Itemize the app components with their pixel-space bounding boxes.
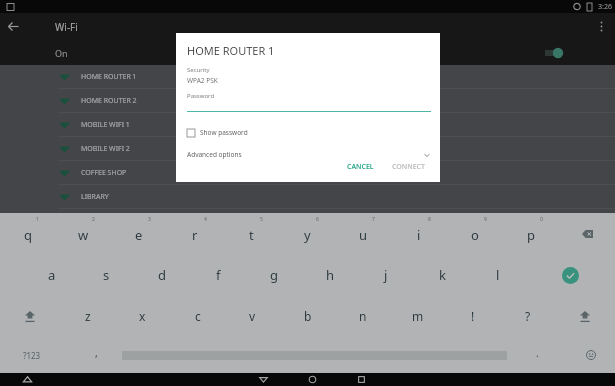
button[interactable]: f — [190, 255, 246, 295]
button[interactable]: Home — [307, 374, 318, 385]
button[interactable]: CANCEL — [341, 159, 380, 173]
button[interactable]: Navigate up — [22, 374, 33, 385]
button[interactable]: 8 — [391, 213, 447, 255]
button[interactable]: COFFEE SHOP — [0, 161, 615, 184]
button[interactable]: MOBILE WIFI 2 — [0, 137, 615, 160]
staticText: 5 — [260, 216, 263, 223]
staticText: . — [536, 346, 539, 360]
button[interactable]: z — [60, 295, 115, 337]
staticText: HOME ROUTER 2 — [81, 96, 137, 106]
button[interactable]: h — [302, 255, 358, 295]
staticText: i — [417, 226, 421, 244]
staticText: b — [304, 308, 312, 324]
staticText: COFFEE SHOP — [81, 168, 127, 178]
button[interactable]: b — [280, 295, 335, 337]
staticText: 1 — [36, 216, 39, 223]
button[interactable]: k — [414, 255, 470, 295]
staticText: 3:26 — [598, 2, 612, 12]
staticText: g — [270, 266, 278, 284]
staticText: 2 — [92, 216, 95, 223]
button[interactable]: Back — [0, 13, 27, 40]
button[interactable]: 5 — [223, 213, 279, 255]
staticText: Security — [187, 66, 210, 74]
staticText: w — [78, 226, 89, 244]
button[interactable]: HOME ROUTER 2 — [0, 89, 615, 112]
staticText: MOBILE WIFI 2 — [81, 144, 130, 154]
button[interactable]: HOME ROUTER 1 — [0, 65, 615, 88]
button[interactable]: v — [225, 295, 280, 337]
staticText: h — [326, 266, 335, 284]
button[interactable]: Enter — [526, 255, 615, 295]
button[interactable]: 9 — [447, 213, 503, 255]
button[interactable]: ?123 — [0, 337, 70, 373]
staticText: k — [439, 266, 446, 284]
button[interactable]: Emoji — [567, 337, 615, 373]
staticText: Show password — [200, 128, 248, 137]
staticText: HOME ROUTER 1 — [81, 72, 137, 82]
button[interactable]: MOBILE WIFI 1 — [0, 113, 615, 136]
button[interactable]: d — [134, 255, 190, 295]
button[interactable]: 3 — [111, 213, 167, 255]
staticText: WPA2 PSK — [187, 76, 218, 85]
button[interactable]: CONNECT — [386, 159, 431, 173]
button[interactable]: Space — [122, 337, 507, 373]
button[interactable]: Recents — [356, 374, 367, 385]
button[interactable]: Show password — [187, 128, 248, 137]
button[interactable]: 7 — [335, 213, 391, 255]
staticText: f — [216, 266, 221, 284]
staticText: o — [471, 226, 479, 244]
staticText: , — [95, 346, 98, 360]
button[interactable]: More options — [588, 13, 615, 40]
button[interactable]: LIBRARY — [0, 185, 615, 208]
button[interactable]: g — [246, 255, 302, 295]
button[interactable]: m — [390, 295, 445, 337]
button[interactable]: Shift — [555, 295, 615, 337]
staticText: m — [412, 308, 424, 324]
button[interactable]: n — [335, 295, 390, 337]
button[interactable]: 6 — [279, 213, 335, 255]
button[interactable]: Advanced options — [187, 150, 431, 159]
staticText: 4 — [204, 216, 207, 223]
button[interactable]: Backspace — [559, 213, 615, 255]
staticText: CANCEL — [347, 162, 374, 170]
staticText: Password — [187, 92, 215, 100]
button[interactable]: Wi-Fi toggle — [541, 46, 565, 60]
button[interactable]: s — [79, 255, 134, 295]
button[interactable]: c — [170, 295, 225, 337]
staticText: ? — [525, 308, 531, 324]
button[interactable]: ! — [445, 295, 500, 337]
staticText: u — [359, 226, 368, 244]
staticText: Wi-Fi — [55, 20, 78, 34]
staticText: t — [249, 226, 254, 244]
staticText: HOME ROUTER 1 — [187, 43, 275, 58]
staticText: LIBRARY — [81, 192, 109, 202]
button[interactable]: Back — [258, 374, 269, 385]
button[interactable]: 4 — [167, 213, 223, 255]
staticText: s — [103, 266, 110, 284]
staticText: ?123 — [23, 350, 41, 361]
button[interactable]: 1 — [0, 213, 55, 255]
staticText: c — [195, 308, 201, 324]
button[interactable]: a — [24, 255, 79, 295]
staticText: p — [527, 226, 535, 244]
staticText: 6 — [316, 216, 319, 223]
staticText: z — [85, 308, 91, 324]
staticText: l — [496, 266, 500, 284]
button[interactable]: Shift — [0, 295, 60, 337]
staticText: 0 — [540, 216, 543, 223]
button[interactable]: x — [115, 295, 170, 337]
staticText: On — [55, 47, 68, 59]
staticText: e — [135, 226, 143, 244]
button[interactable]: j — [358, 255, 414, 295]
button[interactable]: l — [470, 255, 526, 295]
staticText: CONNECT — [392, 162, 425, 170]
button[interactable]: 2 — [55, 213, 111, 255]
staticText: v — [249, 308, 256, 324]
button[interactable]: 0 — [503, 213, 559, 255]
staticText: r — [192, 226, 198, 244]
staticText: MOBILE WIFI 1 — [81, 120, 130, 130]
staticText: j — [384, 266, 388, 284]
button[interactable]: ? — [500, 295, 555, 337]
